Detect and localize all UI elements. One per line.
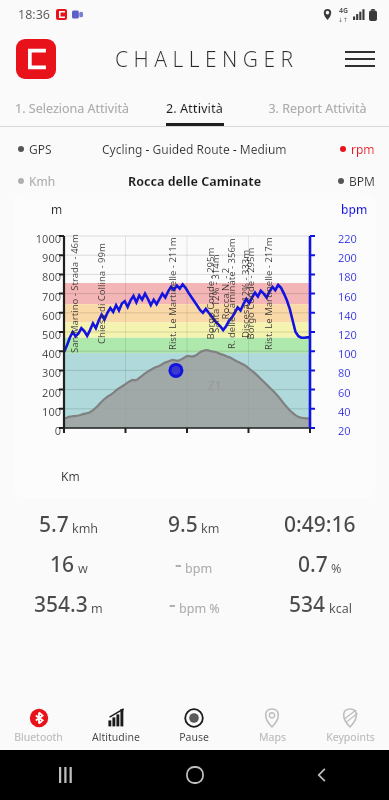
staticText: Borgo Conde - 295m [203, 247, 216, 339]
staticText: 16 [50, 550, 75, 579]
staticText: Maps [259, 730, 286, 744]
button[interactable]: Keypoints [311, 702, 389, 750]
staticText: 9.5 [168, 510, 198, 539]
staticText: 5.7 [39, 510, 69, 539]
staticText: Rocca N. - 2 [218, 267, 231, 319]
staticText: 200 [42, 385, 61, 400]
staticText: Pause [179, 730, 209, 744]
staticText: 3. Report Attività [268, 100, 367, 117]
staticText: 180 [338, 269, 357, 284]
button[interactable]: 1. Seleziona Attività [0, 90, 143, 126]
staticText: Rist. Le Martinelle - 217m [262, 237, 275, 350]
staticText: - [175, 550, 182, 579]
staticText: 0.7 [298, 550, 328, 579]
button[interactable]: Altitudine [77, 702, 155, 750]
staticText: kmh [72, 520, 99, 537]
staticText: 2. Attività [166, 100, 223, 117]
staticText: C H A L L E N G E R [115, 45, 294, 74]
button[interactable]: Maps [233, 702, 311, 750]
staticText: Rist. Le Martinelle - 211m [166, 237, 179, 350]
staticText: Km [61, 468, 80, 484]
staticText: 140 [338, 308, 357, 323]
staticText: 120 [338, 327, 357, 342]
staticText: 100 [42, 404, 61, 419]
staticText: 200 [338, 250, 357, 265]
staticText: Bluetooth [14, 730, 63, 744]
staticText: ↓↑ [338, 16, 349, 23]
staticText: Rocca delle Caminate [128, 173, 262, 190]
staticText: 80 [338, 365, 351, 380]
staticText: 4G [339, 6, 349, 16]
staticText: 600 [42, 308, 61, 323]
staticText: rpm [351, 141, 375, 157]
staticText: BPM [349, 173, 375, 189]
staticText: 40 [338, 404, 351, 419]
button[interactable]: Home [182, 762, 208, 788]
staticText: 1000 [35, 231, 61, 246]
staticText: Discesa 12% - 333m [239, 249, 252, 338]
staticText: km [201, 520, 220, 537]
staticText: Salita 12% - 314m [209, 254, 222, 333]
button[interactable]: 2. Attività [143, 90, 246, 126]
staticText: Kmh [29, 173, 56, 189]
staticText: Z1 [208, 377, 222, 393]
staticText: 500 [42, 327, 61, 342]
staticText: Altitudine [92, 730, 140, 744]
button[interactable]: Challenger logo [16, 39, 56, 79]
staticText: m [51, 201, 63, 217]
staticText: bpm % [179, 600, 220, 617]
staticText: 18:36 [18, 6, 50, 23]
button[interactable]: Back [309, 762, 335, 788]
button[interactable]: Recents [54, 762, 80, 788]
staticText: 100 [338, 346, 357, 361]
staticText: 700 [42, 289, 61, 304]
button[interactable]: 3. Report Attività [246, 90, 389, 126]
staticText: 160 [338, 289, 357, 304]
staticText: 534 [289, 590, 326, 619]
staticText: Cycling - Guided Route - Medium [102, 141, 287, 157]
staticText: - [169, 590, 176, 619]
staticText: m [91, 600, 103, 617]
staticText: 220 [338, 231, 357, 246]
staticText: bpm [185, 560, 213, 577]
staticText: Borgo Conde - 295m [243, 247, 256, 339]
button[interactable]: Menu [345, 44, 375, 74]
staticText: GPS [29, 141, 52, 157]
staticText: 354.3 [34, 590, 88, 619]
staticText: 300 [42, 365, 61, 380]
staticText: w [78, 560, 88, 577]
staticText: 0 [54, 423, 61, 438]
staticText: kcal [329, 600, 352, 617]
staticText: 400 [42, 346, 61, 361]
staticText: 800 [42, 269, 61, 284]
staticText: % [331, 560, 342, 577]
button[interactable]: Pause [155, 702, 233, 750]
staticText: 900 [42, 250, 61, 265]
staticText: bpm [341, 201, 368, 217]
staticText: 60 [338, 385, 351, 400]
staticText: 20 [338, 423, 351, 438]
staticText: R. delle Caminate - 356m [225, 238, 238, 349]
staticText: 1. Seleziona Attività [15, 100, 129, 117]
staticText: 0:49:16 [284, 510, 356, 539]
staticText: San Martino - Strada - 46m [68, 234, 81, 353]
staticText: Chiesa di Collina - 99m [95, 243, 108, 344]
button[interactable]: Bluetooth [0, 702, 77, 750]
staticText: Keypoints [326, 730, 375, 744]
